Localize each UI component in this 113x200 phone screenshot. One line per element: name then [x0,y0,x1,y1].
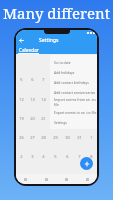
button[interactable] [61,56,73,76]
staticText: 14 [41,97,46,102]
staticText: 8 [54,77,57,82]
button[interactable]: 28 [38,134,49,153]
button[interactable]: Export events to an .ics file [50,107,97,117]
staticText: 15 [53,97,58,102]
staticText: 1 [90,135,93,140]
button[interactable]: 21 [38,115,49,134]
button[interactable]: 5 [16,76,27,96]
button[interactable] [85,76,97,96]
staticText: 29 [53,135,58,140]
button[interactable]: 8 [85,153,97,172]
button[interactable] [73,96,85,115]
button[interactable]: Add holidays [50,67,97,77]
staticText: 13 [30,97,35,102]
staticText: Export events to an .ics file [54,110,97,115]
button[interactable]: 13 [27,96,38,115]
button[interactable]: Tab 1 [21,175,30,184]
button[interactable] [61,76,73,96]
button[interactable]: Tab 3 [62,175,71,184]
staticText: Add contact birthdays [54,80,89,85]
button[interactable]: Add contact anniversaries [50,87,97,97]
button[interactable] [73,76,85,96]
button[interactable]: 20 [27,115,38,134]
staticText: 8 [90,154,93,159]
button[interactable]: 29 [49,134,61,153]
button[interactable]: 27 [27,134,38,153]
button[interactable]: Add event [80,157,93,170]
button[interactable]: 26 [16,134,27,153]
button[interactable]: 24 [73,115,85,134]
staticText: 1 [54,57,57,62]
button[interactable]: 19 [16,115,27,134]
staticText: 7 [78,154,81,159]
staticText: 26 [19,135,24,140]
staticText: 6 [66,154,69,159]
button[interactable]: 25 [85,115,97,134]
staticText: 3 [31,154,34,159]
button[interactable] [85,96,97,115]
button[interactable]: 6 [27,76,38,96]
button[interactable]: 22 [49,115,61,134]
button[interactable]: 8 [49,76,61,96]
button[interactable]: Tab 4 [83,175,92,184]
button[interactable]: 30 [61,134,73,153]
staticText: 28 [41,135,46,140]
button[interactable]: Back [18,37,25,44]
staticText: 19 [19,116,24,121]
staticText: 21 [41,116,46,121]
button[interactable]: 2 [16,153,27,172]
staticText: 4 [42,154,45,159]
staticText: Add contact anniversaries [54,90,96,95]
button[interactable]: Settings [50,117,97,127]
button[interactable]: 1 [85,134,97,153]
staticText: 27 [30,135,35,140]
button[interactable]: 12 [16,96,27,115]
staticText: 20 [30,116,35,121]
button[interactable]: 3 [27,153,38,172]
button[interactable]: 14 [38,96,49,115]
staticText: Settings [54,120,67,125]
staticText: 6 [31,77,34,82]
button[interactable]: Go to date [50,57,97,67]
staticText: 30 [65,135,70,140]
staticText: Import events from an .ics file [54,97,97,107]
staticText: Many different views [0,3,113,43]
button[interactable]: 15 [49,96,61,115]
staticText: 7 [42,77,45,82]
staticText: Add holidays [54,70,75,75]
button[interactable]: 5 [49,153,61,172]
staticText: 2 [20,154,23,159]
button[interactable]: 1 [49,56,61,76]
button[interactable]: 7 [73,153,85,172]
staticText: 12 [19,97,24,102]
button[interactable]: Add contact birthdays [50,77,97,87]
button[interactable] [73,56,85,76]
staticText: Settings [39,37,59,44]
staticText: 5 [20,77,23,82]
button[interactable]: Tab 2 [42,175,51,184]
button[interactable]: 7 [38,76,49,96]
staticText: 31 [77,135,82,140]
button[interactable]: 23 [61,115,73,134]
button[interactable] [61,96,73,115]
staticText: Go to date [54,60,71,65]
button[interactable]: Calendar [19,47,39,53]
button[interactable]: Import events from an .ics file [50,97,97,107]
button[interactable]: 4 [38,153,49,172]
button[interactable]: 31 [73,134,85,153]
button[interactable]: 6 [61,153,73,172]
staticText: 5 [54,154,57,159]
